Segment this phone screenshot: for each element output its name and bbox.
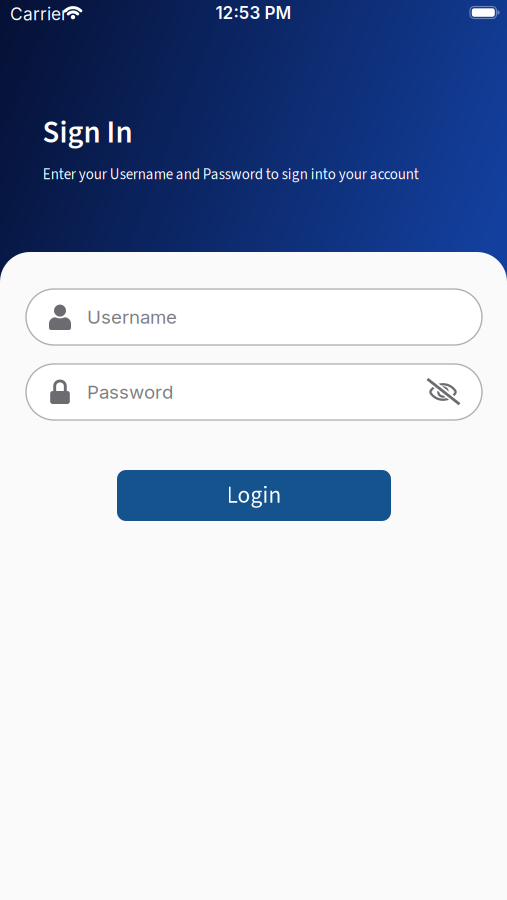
staticText: Sign In <box>42 111 132 155</box>
staticText: Login <box>226 479 281 512</box>
button[interactable]: Show password <box>426 378 460 405</box>
staticText: Password <box>87 381 173 403</box>
staticText: Enter your Username and Password to sign… <box>43 164 419 185</box>
staticText: 12:53 PM <box>215 2 291 23</box>
button[interactable]: Login <box>117 470 391 521</box>
staticText: Carrier <box>10 3 68 24</box>
staticText: Username <box>87 306 177 328</box>
button[interactable]: Username <box>26 289 482 345</box>
button[interactable]: Password <box>26 364 482 420</box>
